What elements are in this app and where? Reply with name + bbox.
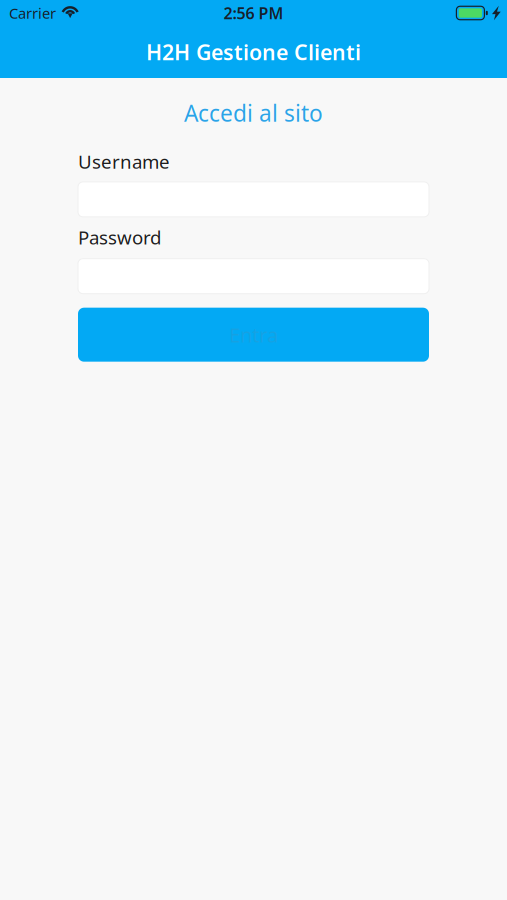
staticText: Carrier (9, 3, 56, 23)
staticText: Entra (229, 321, 278, 348)
staticText: H2H Gestione Clienti (146, 38, 361, 66)
button[interactable]: Entra (78, 308, 429, 362)
staticText: Password (78, 225, 161, 250)
button[interactable]: Accedi al sito (184, 98, 323, 128)
staticText: Accedi al sito (184, 98, 323, 128)
staticText: Username (78, 149, 170, 174)
staticText: 2:56 PM (223, 2, 283, 24)
